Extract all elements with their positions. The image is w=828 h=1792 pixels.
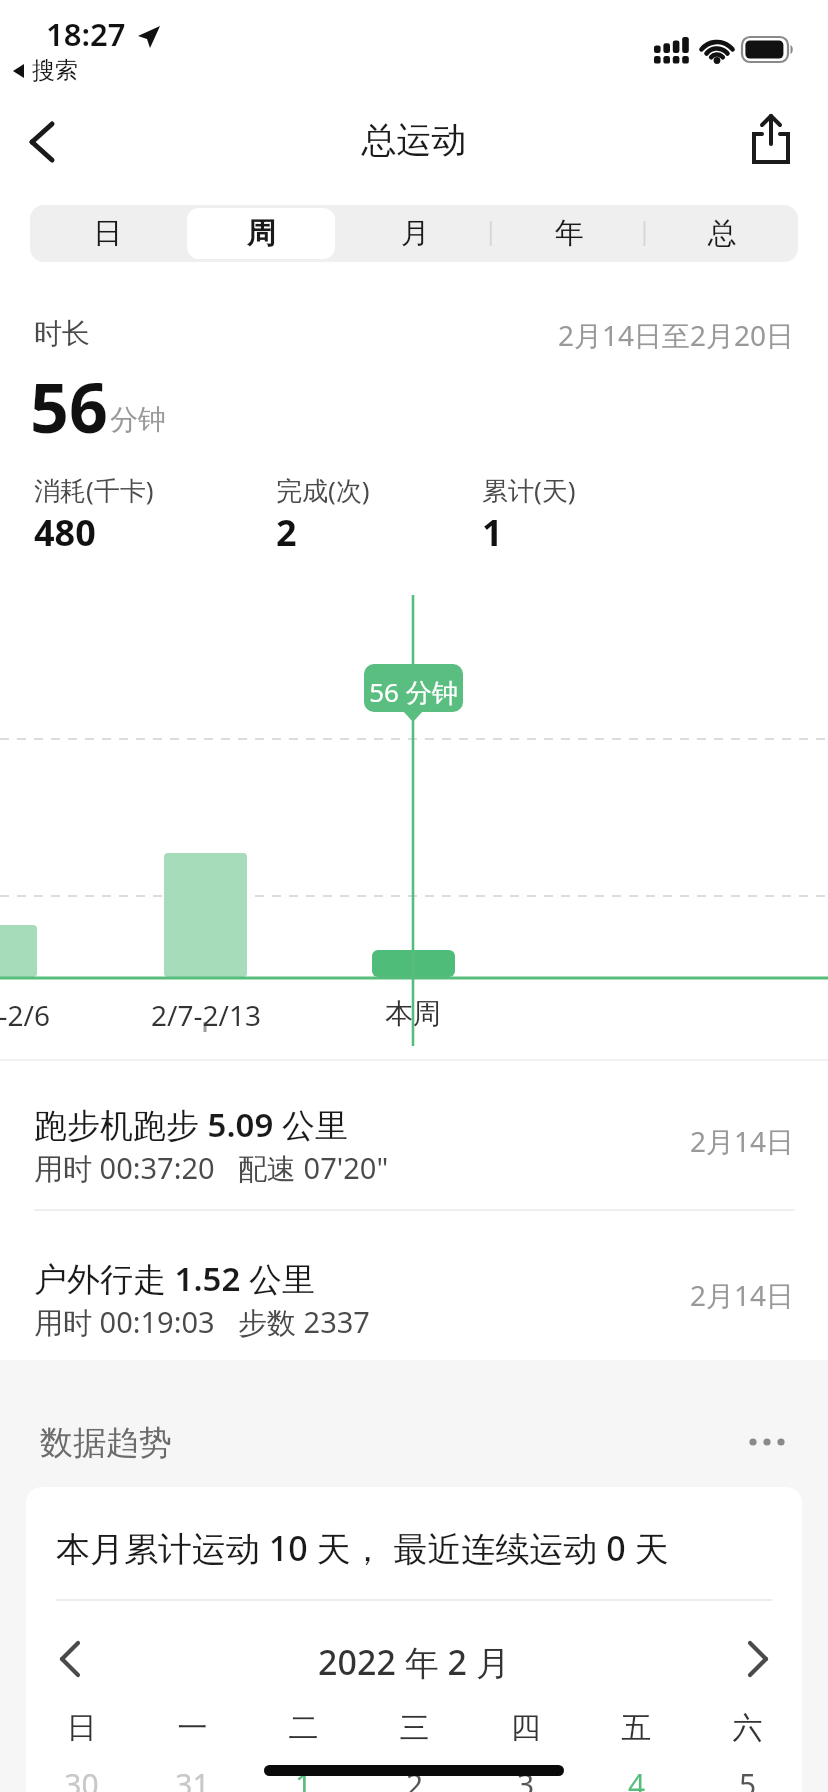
staticText: 二 <box>248 1709 359 1747</box>
staticText: 总运动 <box>314 118 514 162</box>
staticText: 分钟 <box>110 402 166 437</box>
staticText: 搜索 <box>32 56 78 85</box>
button[interactable] <box>18 116 70 168</box>
button[interactable]: 跑步机跑步 5.09 公里 <box>0 1062 828 1234</box>
staticText: 步数 2337 <box>238 1302 370 1342</box>
staticText: 消耗(千卡) <box>34 472 154 508</box>
staticText: 2022 年 2 月 <box>264 1639 564 1685</box>
staticText: 跑步机跑步 5.09 公里 <box>34 1102 348 1147</box>
staticText: 户外行走 1.52 公里 <box>34 1256 315 1301</box>
staticText: 年 <box>555 215 584 252</box>
staticText: 2 <box>276 508 297 557</box>
button[interactable]: 年 <box>492 205 646 262</box>
staticText: 本周 <box>363 996 463 1031</box>
button[interactable]: 户外行走 1.52 公里 <box>0 1234 828 1360</box>
staticText: 六 <box>692 1709 802 1747</box>
button[interactable]: 日 <box>30 205 184 262</box>
staticText: 30 <box>26 1764 137 1792</box>
staticText: 5 <box>692 1764 802 1792</box>
staticText: 周 <box>247 215 276 252</box>
staticText: 数据趋势 <box>40 1422 172 1464</box>
staticText: 2月14日至2月20日 <box>494 316 794 354</box>
staticText: 日 <box>26 1709 137 1747</box>
staticText: 时长 <box>34 316 90 351</box>
staticText: 配速 07'20" <box>238 1148 389 1188</box>
staticText: 三 <box>359 1709 470 1747</box>
staticText: 1 <box>482 508 503 557</box>
staticText: 18:27 <box>46 13 126 55</box>
staticText: 4 <box>581 1764 692 1792</box>
staticText: 五 <box>581 1709 692 1747</box>
staticText: 日 <box>93 215 122 252</box>
button[interactable]: 月 <box>338 205 492 262</box>
button[interactable]: 搜索 <box>10 56 78 85</box>
staticText: 2月14日 <box>594 1276 794 1314</box>
staticText: 用时 00:37:20 <box>34 1148 215 1188</box>
staticText: 2 <box>359 1764 470 1792</box>
staticText: 1/31-2/6 <box>0 996 50 1034</box>
staticText: 一 <box>137 1709 248 1747</box>
staticText: 完成(次) <box>276 472 370 508</box>
staticText: 31 <box>137 1764 248 1792</box>
staticText: 56 <box>30 360 108 453</box>
button[interactable] <box>748 1420 792 1450</box>
button[interactable]: 周 <box>184 205 338 262</box>
staticText: 3 <box>470 1764 581 1792</box>
button[interactable] <box>746 112 798 168</box>
staticText: 总 <box>708 215 737 252</box>
staticText: 2月14日 <box>594 1122 794 1160</box>
button[interactable]: 总 <box>646 205 798 262</box>
staticText: 2/7-2/13 <box>146 996 266 1034</box>
staticText: 1 <box>248 1764 359 1792</box>
staticText: 月 <box>401 215 430 252</box>
staticText: 用时 00:19:03 <box>34 1302 215 1342</box>
staticText: 四 <box>470 1709 581 1747</box>
staticText: 本月累计运动 10 天， 最近连续运动 0 天 <box>56 1525 669 1571</box>
staticText: 56 分钟 <box>364 674 463 710</box>
staticText: 480 <box>34 508 96 557</box>
staticText: 累计(天) <box>482 472 576 508</box>
